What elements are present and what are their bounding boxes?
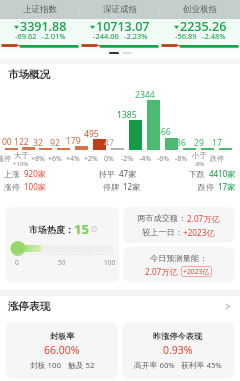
staticText: 2235.26 — [180, 18, 227, 35]
staticText: 0.93% — [163, 343, 193, 357]
staticText: 10713.07 — [96, 18, 150, 35]
staticText: 市场热度： — [29, 224, 74, 235]
staticText: 涨停表现 — [8, 300, 50, 313]
staticText: 上涨 — [4, 169, 20, 179]
staticText: 获利率 45% — [181, 360, 222, 371]
staticText: 495 — [84, 128, 99, 140]
staticText: +6% — [48, 154, 62, 164]
button[interactable]: 两市成交额： — [123, 207, 234, 243]
staticText: -244.06 — [93, 31, 119, 41]
staticText: -8% — [194, 160, 205, 168]
staticText: +2023亿 — [183, 227, 215, 238]
staticText: 100 — [0, 136, 12, 148]
staticText: 2.07万亿 — [187, 213, 220, 224]
staticText: -6% — [157, 154, 170, 164]
staticText: 涨停 — [4, 182, 20, 192]
staticText: 47家 — [119, 168, 137, 179]
staticText: 17 — [212, 137, 222, 149]
button[interactable]: 创业板指 — [160, 0, 240, 58]
staticText: 1385 — [117, 109, 137, 121]
staticText: 大于 — [14, 151, 29, 160]
staticText: +2% — [84, 154, 98, 164]
staticText: 深证成指 — [103, 4, 137, 15]
staticText: 今日预测量能： — [150, 253, 208, 263]
staticText: 2344 — [135, 89, 155, 101]
staticText: 66.00% — [44, 343, 80, 357]
button[interactable]: 涨停表现 — [8, 300, 232, 313]
staticText: 29 — [194, 137, 204, 149]
staticText: -56.89 — [175, 31, 197, 41]
staticText: 跌停 — [198, 182, 214, 192]
staticText: 12家 — [123, 181, 141, 192]
button[interactable]: 市场热度： — [6, 207, 119, 282]
staticText: 停牌 — [103, 182, 119, 192]
staticText: -4% — [139, 154, 152, 164]
staticText: 上证指数 — [23, 4, 57, 15]
staticText: +10% — [13, 160, 29, 168]
staticText: 100家 — [24, 181, 46, 192]
staticText: 0 — [15, 258, 19, 267]
staticText: 3391.88 — [20, 18, 67, 35]
staticText: 触及 52 — [68, 360, 95, 371]
staticText: 17家 — [218, 181, 236, 192]
staticText: 涨停 — [0, 154, 11, 163]
staticText: 2.07万亿 — [145, 266, 178, 277]
staticText: 179 — [66, 135, 81, 147]
staticText: 小于 — [192, 151, 207, 160]
staticText: 高开率 60% — [134, 360, 175, 371]
staticText: 122 — [14, 136, 29, 148]
staticText: 0% — [104, 154, 114, 164]
staticText: 两市成交额： — [137, 213, 187, 223]
button[interactable]: 深证成指 — [80, 0, 160, 58]
button[interactable]: 今日预测量能： — [123, 247, 234, 282]
staticText: +2023亿 — [183, 267, 210, 276]
staticText: 创业板指 — [183, 4, 217, 15]
staticText: 4410家 — [209, 168, 236, 179]
staticText: 50 — [58, 258, 66, 267]
staticText: 昨涨停今表现 — [153, 331, 203, 341]
staticText: 15 — [74, 220, 89, 238]
staticText: 下跌 — [189, 169, 205, 179]
staticText: -69.62 — [15, 31, 37, 41]
staticText: 封板 100 — [30, 360, 62, 371]
staticText: -2.01% — [42, 31, 66, 41]
staticText: 100 — [104, 258, 116, 267]
staticText: 47 — [104, 137, 114, 149]
staticText: 市场概况 — [8, 68, 50, 81]
button[interactable]: 封板率 — [6, 322, 118, 379]
staticText: 92 — [50, 137, 60, 149]
staticText: -2% — [121, 154, 134, 164]
button[interactable]: 上证指数 — [0, 0, 80, 58]
staticText: -8% — [175, 154, 188, 164]
staticText: +4% — [66, 154, 80, 164]
staticText: 32 — [33, 137, 43, 149]
staticText: 566 — [156, 126, 171, 138]
staticText: 封板率 — [50, 331, 75, 341]
staticText: 跌停 — [210, 154, 224, 163]
staticText: -2.23% — [124, 31, 148, 41]
staticText: 较上一日： — [142, 227, 183, 237]
button[interactable]: 昨涨停今表现 — [122, 322, 234, 379]
staticText: +8% — [31, 154, 45, 164]
staticText: 86 — [176, 137, 186, 149]
staticText: 持平 — [99, 169, 115, 179]
staticText: 920家 — [24, 168, 46, 179]
staticText: -2.48% — [202, 31, 226, 41]
